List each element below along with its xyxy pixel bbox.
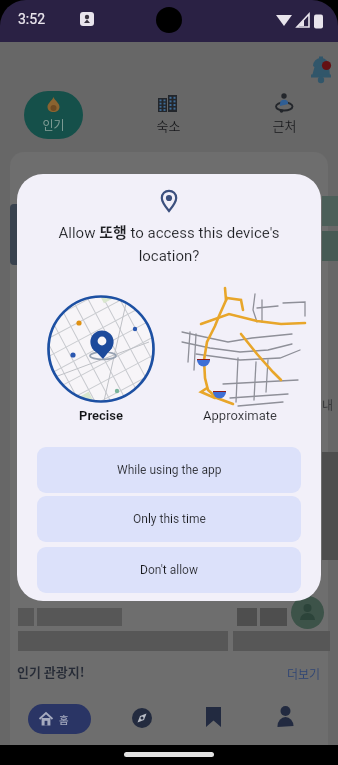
button[interactable]: 근처 bbox=[268, 116, 301, 135]
staticText: Allow 또행 to access this device's locatio… bbox=[17, 221, 321, 265]
button[interactable]: Don't allow bbox=[37, 547, 301, 593]
button[interactable]: Only this time bbox=[37, 496, 301, 542]
staticText: 홈 bbox=[59, 712, 69, 727]
staticText: Precise bbox=[51, 408, 151, 423]
button[interactable]: 숙소 bbox=[152, 116, 185, 135]
staticText: Only this time bbox=[133, 512, 206, 526]
button[interactable] bbox=[47, 295, 155, 403]
staticText: Approximate bbox=[190, 408, 290, 423]
button[interactable] bbox=[277, 706, 294, 727]
staticText: While using the app bbox=[117, 463, 222, 477]
button[interactable] bbox=[24, 91, 83, 139]
staticText: Don't allow bbox=[140, 563, 198, 577]
button[interactable]: While using the app bbox=[37, 447, 301, 493]
button[interactable] bbox=[177, 286, 309, 408]
staticText: 인기 bbox=[40, 116, 67, 133]
button[interactable]: 더보기 bbox=[287, 665, 321, 682]
staticText: 3:52 bbox=[18, 11, 45, 27]
button[interactable] bbox=[132, 708, 152, 728]
button[interactable] bbox=[28, 704, 91, 734]
staticText: 내 bbox=[322, 396, 334, 413]
button[interactable] bbox=[206, 707, 221, 727]
staticText: 인기 관광지! bbox=[17, 662, 85, 681]
